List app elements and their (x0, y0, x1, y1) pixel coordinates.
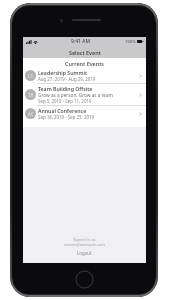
staticText: 9:41 AM (71, 38, 91, 45)
button[interactable]: Logout (74, 249, 95, 257)
button[interactable]: LS (23, 68, 146, 83)
staticText: Current Events (65, 60, 105, 67)
staticText: Signed in as (73, 237, 96, 242)
button[interactable]: AC (23, 106, 146, 121)
staticText: Aug 27, 2019 - Aug 29, 2019 (38, 76, 96, 82)
button[interactable]: TB (23, 84, 146, 105)
staticText: Team Building Offsite (38, 85, 93, 92)
staticText: 100% (125, 39, 136, 45)
staticText: events@example.com (64, 242, 106, 247)
staticText: Leadership Summit (38, 69, 88, 76)
staticText: Sep 18, 2019 - Sep 25, 2019 (38, 114, 94, 120)
staticText: Sep 5, 2019 - Sep 11, 2019 (38, 98, 92, 104)
staticText: LS (28, 73, 33, 79)
staticText: Logout (77, 250, 92, 256)
staticText: Grow as a person, Grow as a team (38, 92, 113, 98)
staticText: Select Event (69, 49, 101, 56)
staticText: Annual Conference (38, 107, 87, 114)
staticText: AC (28, 111, 34, 117)
staticText: TB (28, 92, 34, 98)
